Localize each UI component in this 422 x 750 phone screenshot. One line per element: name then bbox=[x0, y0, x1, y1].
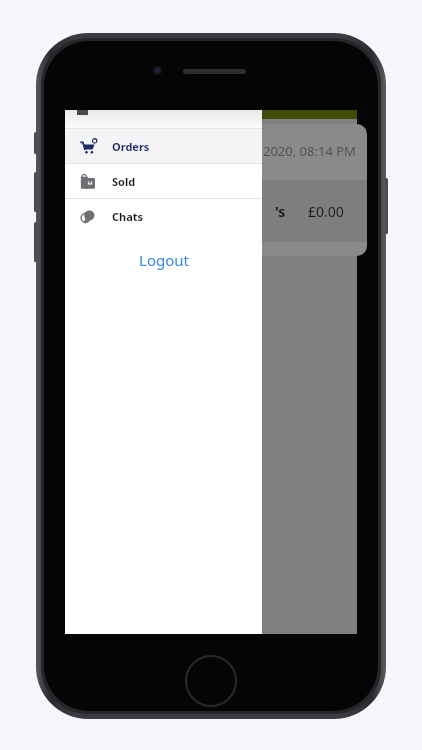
other: Orders bbox=[80, 138, 97, 155]
button[interactable]: Orders bbox=[65, 129, 262, 163]
button[interactable]: Logout bbox=[65, 244, 262, 276]
other: Chats bbox=[80, 208, 97, 225]
staticText: Logout bbox=[139, 250, 189, 270]
staticText: 's bbox=[275, 202, 286, 221]
staticText: Sold bbox=[112, 174, 136, 189]
staticText: £0.00 bbox=[308, 202, 344, 221]
button[interactable]: Chats bbox=[65, 199, 262, 233]
staticText: Orders bbox=[112, 139, 150, 154]
button[interactable]: Sold bbox=[65, 164, 262, 198]
other: Sold bbox=[80, 173, 97, 190]
staticText: 2020, 08:14 PM bbox=[263, 142, 356, 160]
staticText: Chats bbox=[112, 209, 144, 224]
